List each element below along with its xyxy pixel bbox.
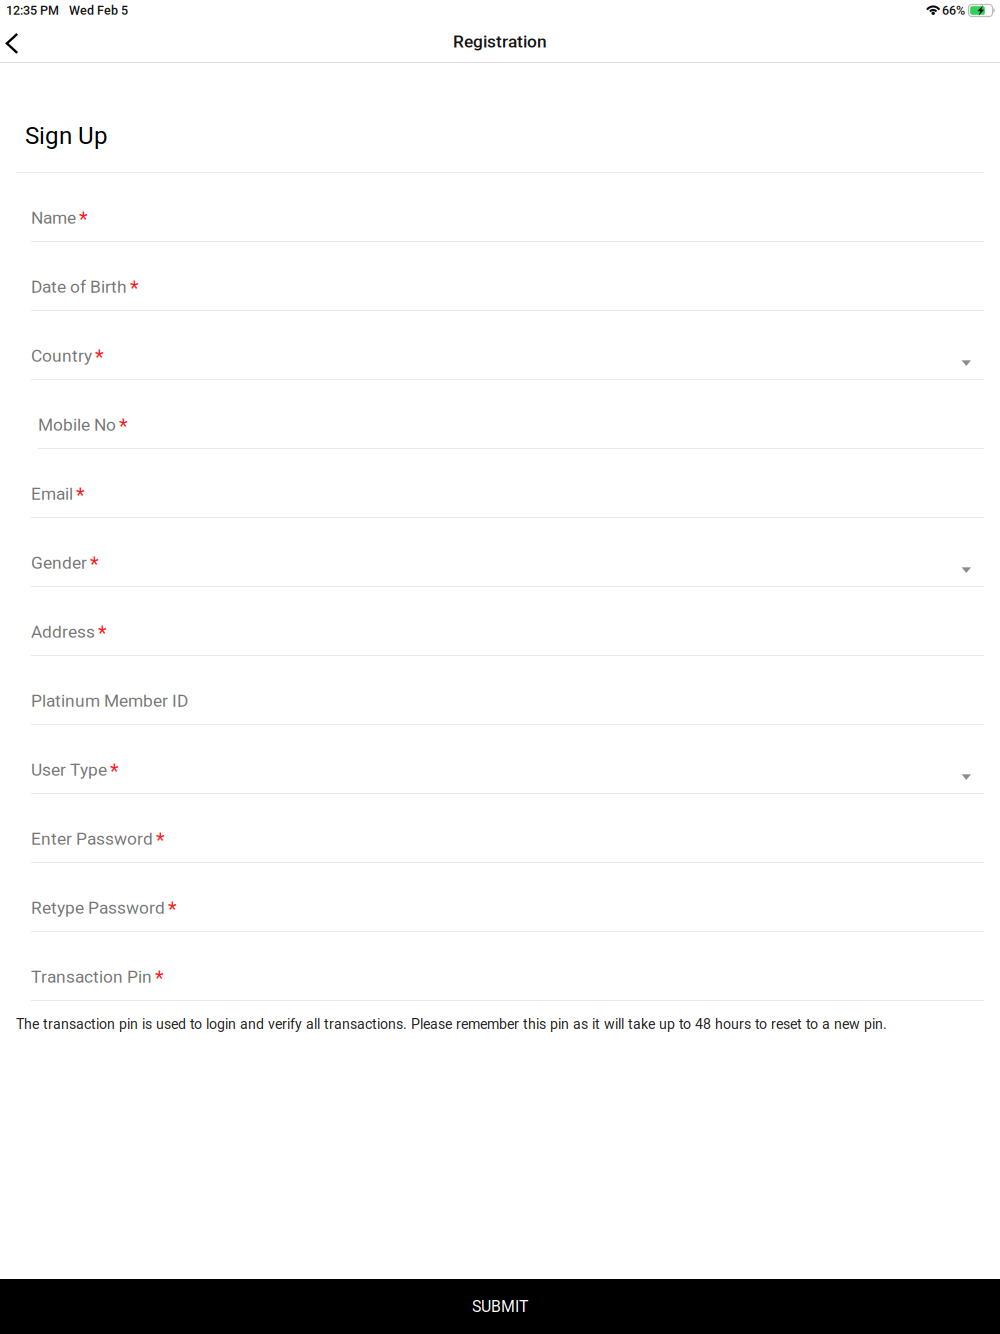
staticText: * — [110, 760, 119, 783]
staticText: * — [156, 829, 165, 852]
button[interactable]: Platinum Member ID — [0, 656, 1000, 725]
button[interactable]: Gender — [0, 518, 1000, 587]
staticText: Enter Password — [31, 829, 153, 849]
staticText: Registration — [453, 31, 547, 52]
staticText: User Type — [31, 760, 107, 780]
staticText: * — [95, 346, 104, 369]
button[interactable]: Transaction Pin — [0, 932, 1000, 1001]
staticText: * — [119, 415, 128, 438]
staticText: * — [130, 277, 139, 300]
staticText: Name — [31, 208, 76, 228]
staticText: Wed Feb 5 — [69, 3, 128, 18]
staticText: * — [168, 898, 177, 921]
staticText: * — [155, 967, 164, 990]
button[interactable]: Mobile No — [0, 380, 1000, 449]
staticText: Date of Birth — [31, 277, 127, 297]
staticText: * — [90, 553, 99, 576]
staticText: Gender — [31, 553, 87, 573]
button[interactable]: Retype Password — [0, 863, 1000, 932]
staticText: Country — [31, 346, 92, 366]
button[interactable]: Back — [0, 19, 44, 63]
staticText: Address — [31, 622, 95, 642]
staticText: Transaction Pin — [31, 967, 152, 987]
staticText: Platinum Member ID — [31, 691, 188, 711]
staticText: Retype Password — [31, 898, 165, 918]
button[interactable]: Address — [0, 587, 1000, 656]
button[interactable]: Enter Password — [0, 794, 1000, 863]
button[interactable]: SUBMIT — [0, 1279, 1000, 1334]
staticText: 66% — [942, 3, 965, 18]
staticText: The transaction pin is used to login and… — [16, 1016, 887, 1033]
button[interactable]: Email — [0, 449, 1000, 518]
staticText: Email — [31, 484, 73, 504]
button[interactable]: User Type — [0, 725, 1000, 794]
staticText: * — [79, 208, 88, 231]
button[interactable]: Name — [0, 173, 1000, 242]
staticText: Sign Up — [25, 122, 108, 150]
staticText: SUBMIT — [472, 1297, 528, 1316]
staticText: * — [98, 622, 107, 645]
button[interactable]: Country — [0, 311, 1000, 380]
staticText: * — [76, 484, 85, 507]
button[interactable]: Date of Birth — [0, 242, 1000, 311]
staticText: Mobile No — [38, 415, 116, 435]
staticText: 12:35 PM — [6, 3, 59, 18]
